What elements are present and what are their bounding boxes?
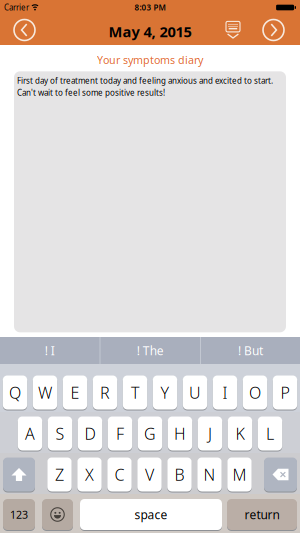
staticText: space bbox=[134, 506, 167, 522]
staticText: ! But bbox=[238, 342, 263, 358]
button[interactable]: D bbox=[78, 416, 102, 451]
staticText: I bbox=[222, 382, 227, 403]
button[interactable]: Shift bbox=[3, 457, 35, 492]
button[interactable]: I bbox=[213, 375, 237, 410]
staticText: J bbox=[208, 423, 212, 444]
button[interactable]: Emoji bbox=[42, 499, 73, 531]
button[interactable]: Dismiss keyboard bbox=[226, 21, 240, 39]
button[interactable]: N bbox=[197, 457, 222, 492]
staticText: U bbox=[189, 382, 201, 403]
button[interactable]: Delete bbox=[264, 457, 297, 492]
button[interactable]: P bbox=[273, 375, 297, 410]
staticText: E bbox=[70, 382, 79, 403]
staticText: O bbox=[249, 382, 261, 403]
button[interactable]: L bbox=[258, 416, 282, 451]
staticText: Can't wait to feel some positive results… bbox=[17, 87, 165, 98]
button[interactable]: Z bbox=[47, 457, 72, 492]
button[interactable]: V bbox=[137, 457, 162, 492]
button[interactable]: Previous day bbox=[0, 19, 35, 40]
staticText: ! The bbox=[137, 342, 164, 358]
button[interactable]: Next day bbox=[263, 19, 300, 40]
button[interactable]: E bbox=[63, 375, 87, 410]
button[interactable]: A bbox=[18, 416, 42, 451]
button[interactable]: ! But bbox=[201, 337, 300, 364]
staticText: M bbox=[232, 464, 246, 485]
staticText: First day of treatment today and feeling… bbox=[17, 75, 273, 86]
staticText: V bbox=[145, 464, 154, 485]
button[interactable]: M bbox=[227, 457, 252, 492]
staticText: W bbox=[38, 382, 52, 403]
button[interactable]: Numbers bbox=[3, 499, 35, 531]
staticText: K bbox=[235, 423, 244, 444]
button[interactable]: S bbox=[48, 416, 72, 451]
staticText: F bbox=[116, 423, 124, 444]
button[interactable]: Return bbox=[227, 499, 297, 531]
staticText: Q bbox=[9, 382, 21, 403]
staticText: 8:03 PM bbox=[134, 2, 165, 13]
staticText: N bbox=[203, 464, 215, 485]
button[interactable]: R bbox=[93, 375, 117, 410]
button[interactable]: K bbox=[228, 416, 252, 451]
staticText: T bbox=[131, 382, 139, 403]
staticText: ! I bbox=[45, 342, 55, 358]
button[interactable]: ! The bbox=[100, 337, 200, 364]
button[interactable]: J bbox=[198, 416, 222, 451]
staticText: G bbox=[144, 423, 156, 444]
staticText: L bbox=[266, 423, 274, 444]
staticText: A bbox=[25, 423, 35, 444]
button[interactable]: H bbox=[168, 416, 192, 451]
staticText: X bbox=[85, 464, 94, 485]
button[interactable]: G bbox=[138, 416, 162, 451]
button[interactable]: O bbox=[243, 375, 267, 410]
button[interactable]: B bbox=[167, 457, 192, 492]
button[interactable]: Q bbox=[3, 375, 27, 410]
button[interactable]: U bbox=[183, 375, 207, 410]
button[interactable]: W bbox=[33, 375, 57, 410]
staticText: H bbox=[174, 423, 186, 444]
button[interactable]: T bbox=[123, 375, 147, 410]
button[interactable]: F bbox=[108, 416, 132, 451]
button[interactable]: Space bbox=[80, 499, 222, 531]
staticText: D bbox=[84, 423, 95, 444]
staticText: Y bbox=[160, 382, 169, 403]
staticText: C bbox=[114, 464, 124, 485]
button[interactable]: Y bbox=[153, 375, 177, 410]
staticText: R bbox=[100, 382, 110, 403]
staticText: Your symptoms diary bbox=[97, 53, 203, 67]
staticText: S bbox=[55, 423, 64, 444]
staticText: 123 bbox=[10, 507, 28, 522]
button[interactable]: X bbox=[77, 457, 102, 492]
staticText: B bbox=[174, 464, 184, 485]
staticText: Z bbox=[55, 464, 64, 485]
button[interactable]: ! I bbox=[0, 337, 99, 364]
staticText: P bbox=[280, 382, 289, 403]
staticText: May 4, 2015 bbox=[108, 22, 191, 41]
staticText: return bbox=[244, 506, 279, 522]
staticText: Carrier bbox=[4, 2, 29, 13]
button[interactable]: C bbox=[107, 457, 132, 492]
